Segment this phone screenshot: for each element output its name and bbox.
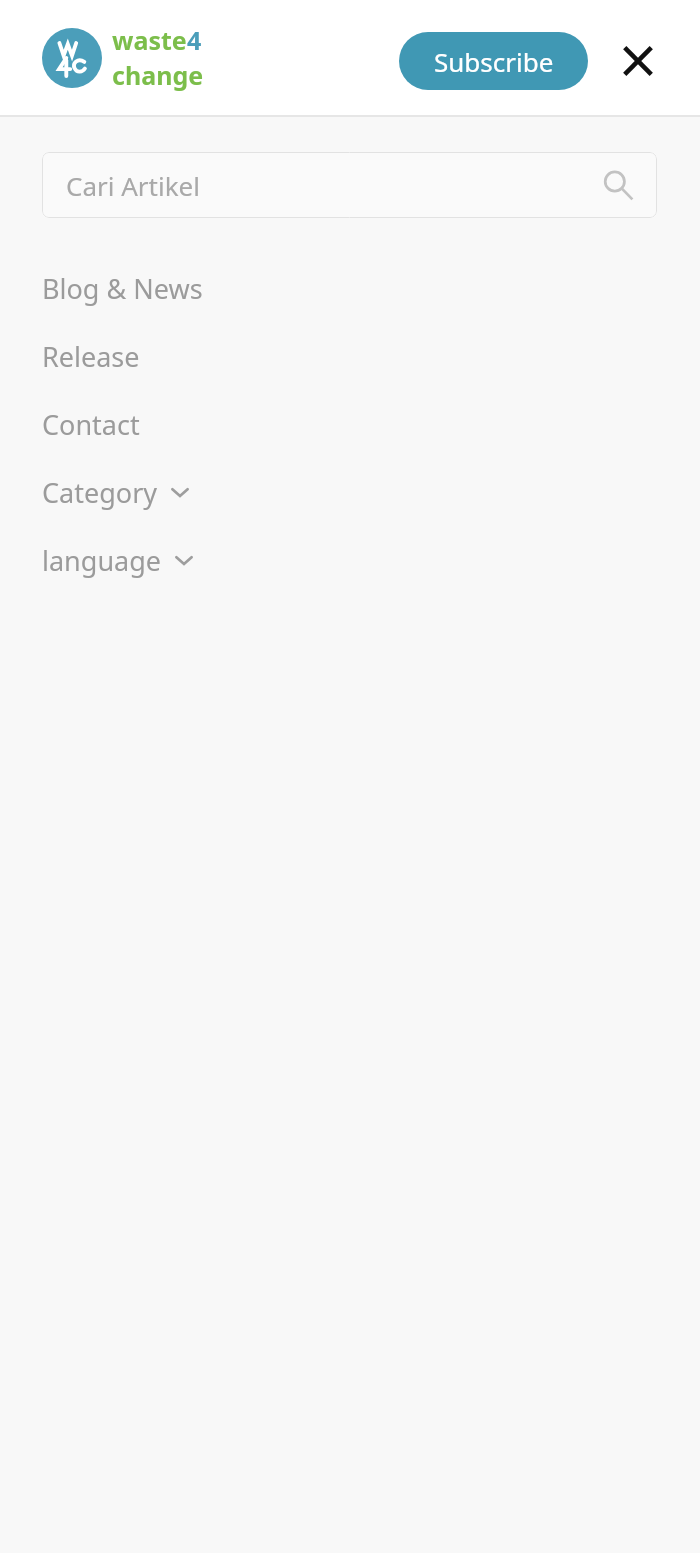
staticText: Category xyxy=(42,474,158,511)
staticText: waste xyxy=(112,23,187,57)
staticText: Contact xyxy=(42,406,140,443)
button[interactable]: language xyxy=(0,526,700,594)
staticText: Subscribe xyxy=(434,44,554,79)
button[interactable]: Category xyxy=(0,458,700,526)
button[interactable]: Waste4Change home xyxy=(42,23,204,92)
button[interactable]: Subscribe xyxy=(399,32,588,90)
staticText: Blog & News xyxy=(42,270,203,307)
staticText: change xyxy=(112,58,204,92)
button[interactable]: Contact xyxy=(0,390,700,458)
staticText: 4 xyxy=(187,23,202,57)
staticText: Cari Artikel xyxy=(66,168,200,203)
button[interactable]: Cari Artikel xyxy=(42,152,657,218)
staticText: Release xyxy=(42,338,140,375)
button[interactable]: Release xyxy=(0,322,700,390)
button[interactable]: Blog & News xyxy=(0,254,700,322)
button[interactable]: Close xyxy=(608,31,668,91)
staticText: language xyxy=(42,542,162,579)
